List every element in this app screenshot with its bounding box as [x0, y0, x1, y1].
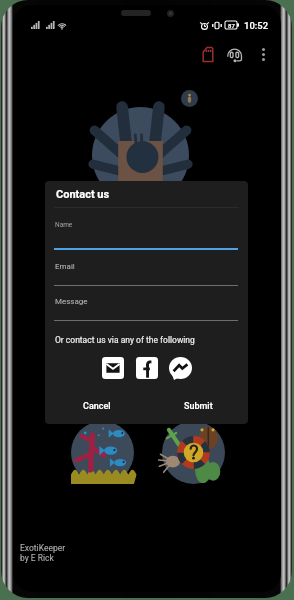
button[interactable]: Messenger	[169, 357, 192, 380]
button[interactable]: Submit	[171, 395, 225, 417]
staticText: Contact us	[56, 188, 110, 201]
staticText: Or contact us via any of the following	[55, 335, 195, 345]
button[interactable]: Cancel	[70, 395, 124, 417]
staticText: 87	[228, 22, 235, 29]
staticText: Email	[55, 262, 75, 271]
button[interactable]: Support	[222, 41, 248, 67]
staticText: Cancel	[83, 401, 111, 412]
button[interactable]: Email us	[102, 357, 124, 379]
button[interactable]: Storage	[195, 41, 221, 67]
staticText: Name	[55, 221, 73, 229]
button[interactable]: More options	[252, 43, 274, 65]
staticText: by E Rick	[20, 553, 54, 563]
staticText: Submit	[184, 401, 213, 412]
staticText: ExotiKeeper	[20, 543, 66, 553]
button[interactable]: Facebook	[136, 357, 158, 379]
staticText: Message	[55, 297, 88, 306]
staticText: 10:52	[244, 20, 269, 31]
